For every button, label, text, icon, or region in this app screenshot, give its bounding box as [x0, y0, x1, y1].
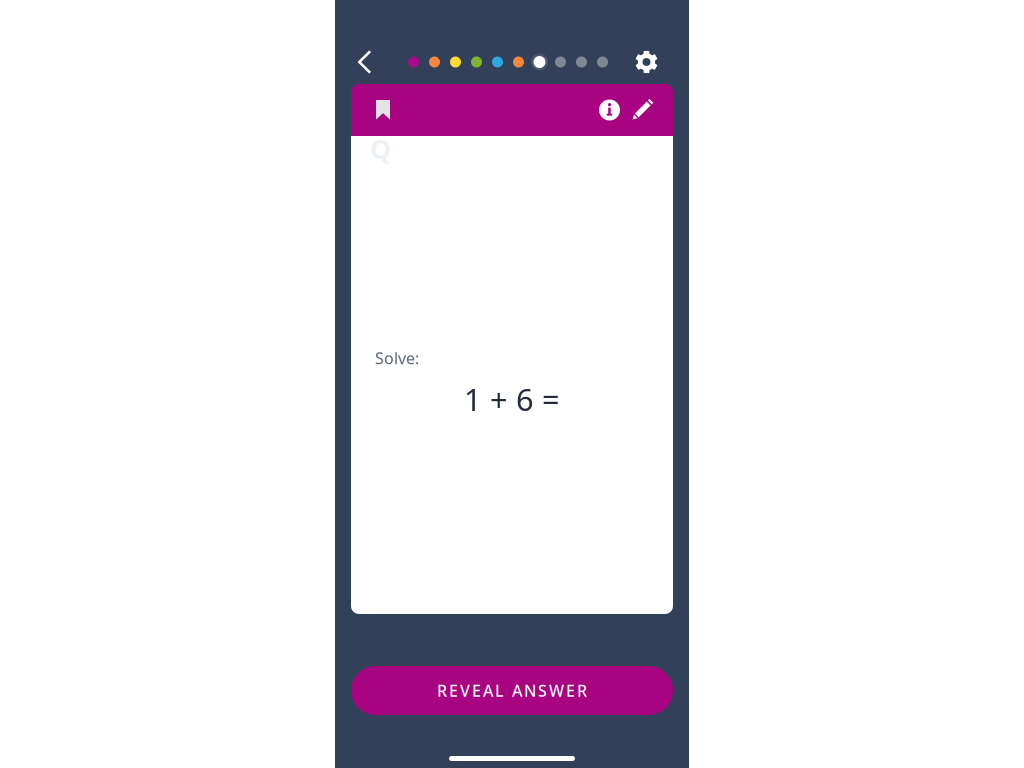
staticText: 1 + 6 =: [464, 379, 560, 419]
button[interactable]: Back: [356, 40, 400, 84]
button[interactable]: REVEAL ANSWER: [351, 666, 673, 715]
button[interactable]: Info: [599, 84, 620, 136]
staticText: Solve:: [375, 347, 419, 369]
button[interactable]: Bookmark: [363, 84, 403, 136]
staticText: REVEAL ANSWER: [437, 680, 587, 701]
button[interactable]: Edit: [634, 84, 652, 136]
button[interactable]: Settings: [614, 40, 658, 84]
staticText: Q: [370, 131, 391, 166]
